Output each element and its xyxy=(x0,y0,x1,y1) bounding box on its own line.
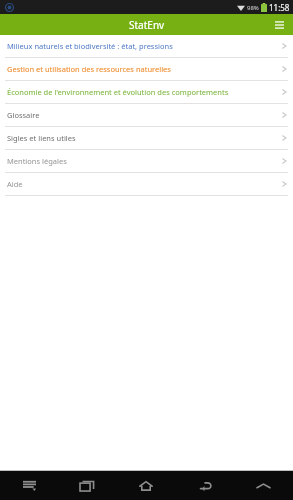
button[interactable]: Aide xyxy=(0,173,293,195)
button[interactable]: Recent apps xyxy=(58,471,116,500)
button[interactable]: Gestion et utilisation des ressources na… xyxy=(0,58,293,80)
button[interactable]: Menu xyxy=(0,471,58,500)
button[interactable]: Home xyxy=(116,471,175,500)
staticText: 98% xyxy=(247,4,259,12)
button[interactable]: Back xyxy=(175,471,234,500)
staticText: Économie de l'environnement et évolution… xyxy=(7,87,278,97)
staticText: 11:58 xyxy=(269,2,290,13)
staticText: Aide xyxy=(7,179,278,189)
button[interactable]: Glossaire xyxy=(0,104,293,126)
button[interactable]: Mentions légales xyxy=(0,150,293,172)
staticText: StatEnv xyxy=(129,18,165,32)
staticText: Milieux naturels et biodiversité : état,… xyxy=(7,41,278,51)
staticText: Gestion et utilisation des ressources na… xyxy=(7,64,278,74)
staticText: Sigles et liens utiles xyxy=(7,133,278,143)
button[interactable]: Économie de l'environnement et évolution… xyxy=(0,81,293,103)
button[interactable]: Menu xyxy=(271,17,287,33)
staticText: Mentions légales xyxy=(7,156,278,166)
staticText: Glossaire xyxy=(7,110,278,120)
button[interactable]: Collapse xyxy=(234,471,293,500)
button[interactable]: Sigles et liens utiles xyxy=(0,127,293,149)
button[interactable]: Milieux naturels et biodiversité : état,… xyxy=(0,35,293,57)
